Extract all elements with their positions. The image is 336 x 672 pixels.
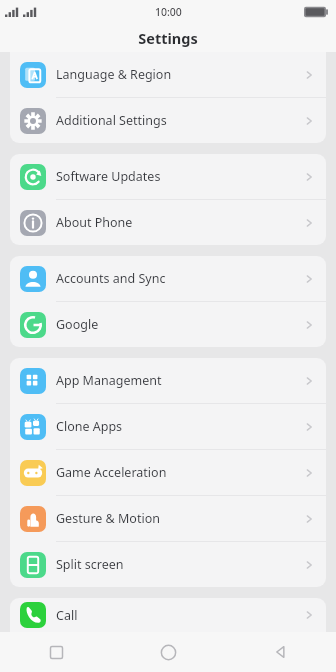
button[interactable]: Game Acceleration xyxy=(10,450,326,495)
staticText: Google xyxy=(56,316,302,333)
staticText: Clone Apps xyxy=(56,418,302,435)
staticText: Accounts and Sync xyxy=(56,270,302,287)
staticText: Call xyxy=(56,607,302,624)
button[interactable]: Language & Region xyxy=(10,52,326,97)
staticText: Language & Region xyxy=(56,66,302,83)
button[interactable]: Gesture & Motion xyxy=(10,496,326,541)
button[interactable]: Software Updates xyxy=(10,154,326,199)
button[interactable]: Accounts and Sync xyxy=(10,256,326,301)
staticText: 10:00 xyxy=(155,5,182,19)
button[interactable]: Call xyxy=(10,598,326,632)
button[interactable]: About Phone xyxy=(10,200,326,245)
button[interactable]: Recent apps xyxy=(0,632,112,672)
button[interactable]: Google xyxy=(10,302,326,347)
button[interactable]: Clone Apps xyxy=(10,404,326,449)
staticText: Software Updates xyxy=(56,168,302,185)
staticText: Settings xyxy=(138,28,198,48)
button[interactable]: App Management xyxy=(10,358,326,403)
button[interactable]: Back xyxy=(224,632,336,672)
button[interactable]: Home xyxy=(112,632,224,672)
staticText: Split screen xyxy=(56,556,302,573)
staticText: Additional Settings xyxy=(56,112,302,129)
staticText: About Phone xyxy=(56,214,302,231)
button[interactable]: Split screen xyxy=(10,542,326,587)
staticText: Game Acceleration xyxy=(56,464,302,481)
staticText: App Management xyxy=(56,372,302,389)
staticText: Gesture & Motion xyxy=(56,510,302,527)
button[interactable]: Additional Settings xyxy=(10,98,326,143)
